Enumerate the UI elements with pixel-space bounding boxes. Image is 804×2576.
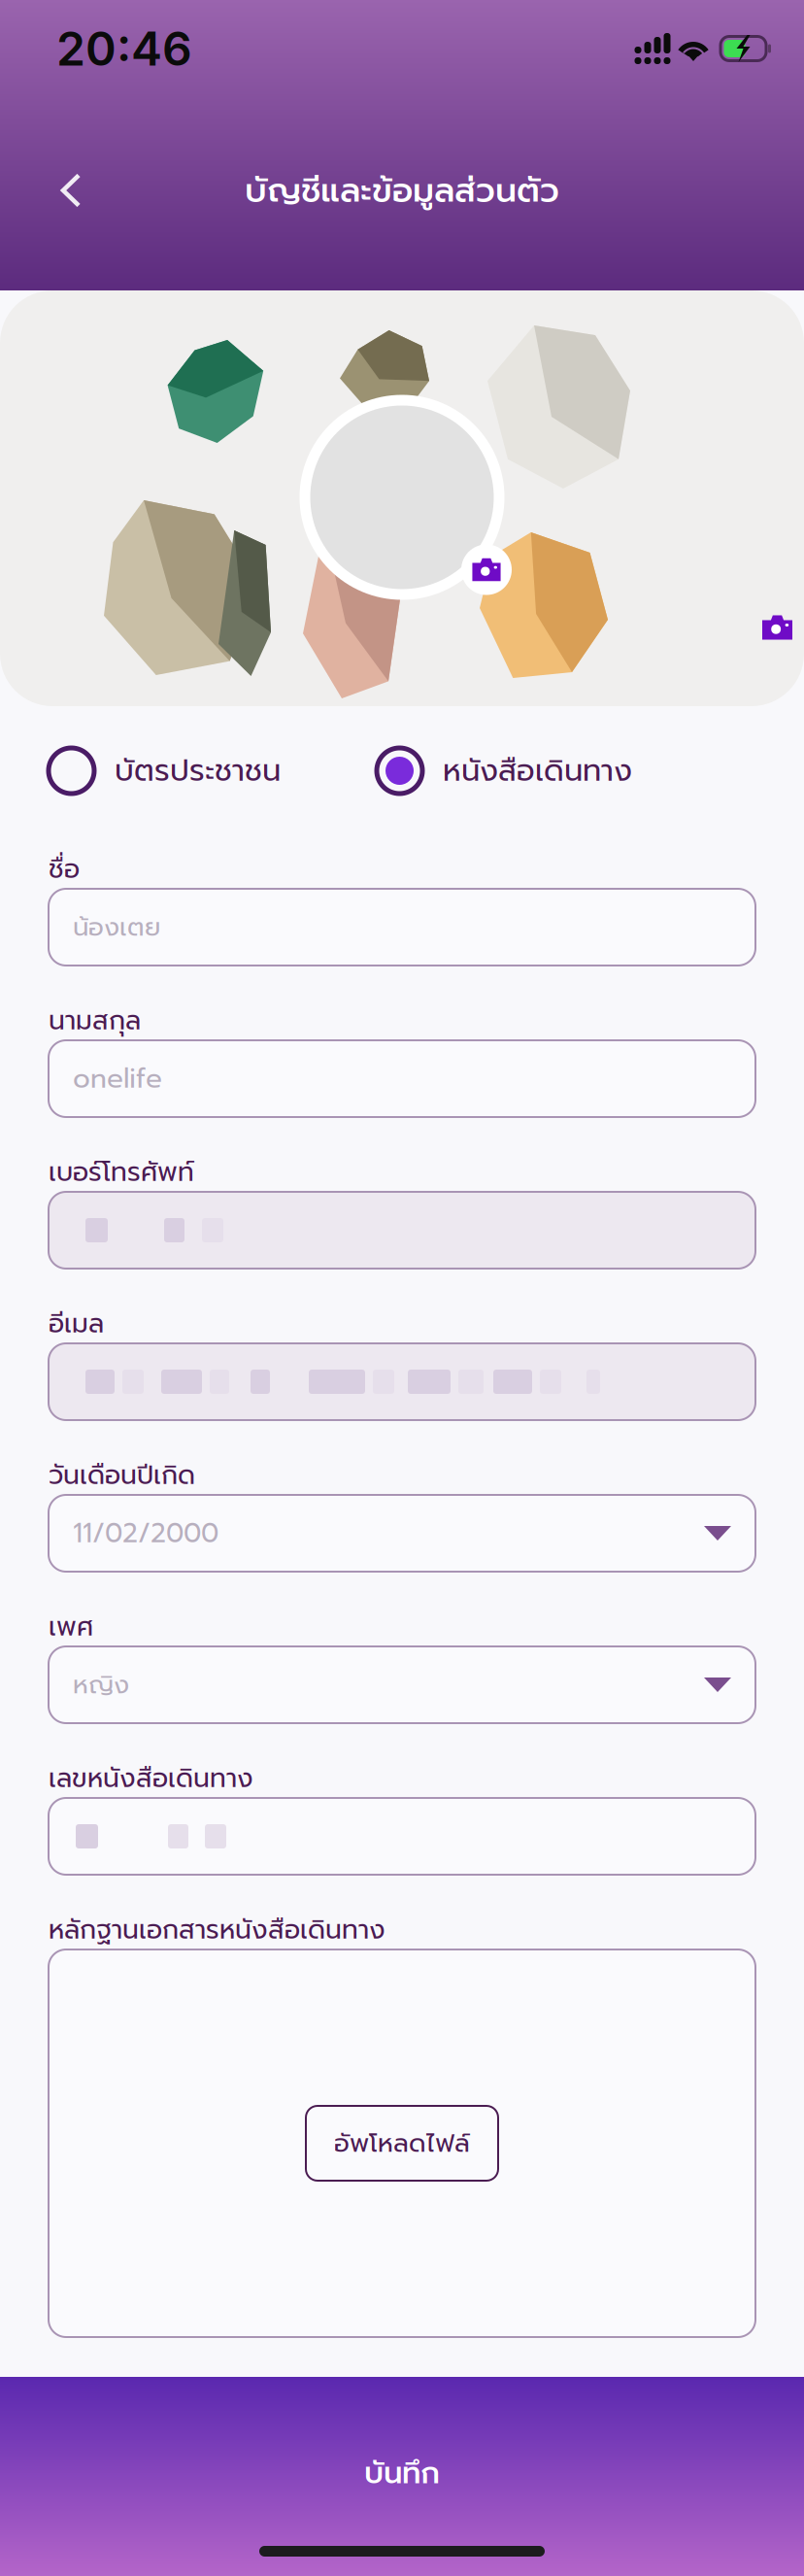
button[interactable]: บัตรประชาชน	[49, 748, 281, 794]
button[interactable]: Back	[41, 160, 101, 220]
staticText: บัญชีและข้อมูลส่วนตัว	[245, 165, 559, 216]
staticText: เพศ	[49, 1607, 93, 1646]
button[interactable]: หนังสือเดินทาง	[377, 748, 632, 794]
staticText: บันทึก	[364, 2451, 440, 2496]
staticText: เลขหนังสือเดินทาง	[49, 1759, 253, 1798]
staticText: บัตรประชาชน	[115, 748, 281, 793]
button[interactable]: Change profile photo	[292, 388, 512, 607]
button[interactable]: Change cover photo	[754, 608, 800, 647]
staticText: นามสกุล	[49, 1001, 141, 1040]
button[interactable]: อัพโหลดไฟล์	[306, 2106, 498, 2181]
staticText: วันเดือนปีเกิด	[49, 1456, 195, 1495]
staticText: หญิง	[73, 1666, 129, 1704]
staticText: อีเมล	[49, 1304, 104, 1343]
staticText: อัพโหลดไฟล์	[334, 2124, 470, 2162]
button[interactable]: บันทึก	[0, 2377, 804, 2576]
staticText: ชื่อ	[49, 850, 80, 889]
staticText: 11/02/2000	[73, 1513, 218, 1553]
staticText: หลักฐานเอกสารหนังสือเดินทาง	[49, 1910, 385, 1949]
staticText: น้องเตย	[73, 908, 160, 946]
staticText: 20:46	[56, 20, 192, 77]
staticText: เบอร์โทรศัพท์	[49, 1153, 194, 1192]
staticText: onelife	[73, 1058, 162, 1099]
staticText: หนังสือเดินทาง	[443, 748, 632, 793]
